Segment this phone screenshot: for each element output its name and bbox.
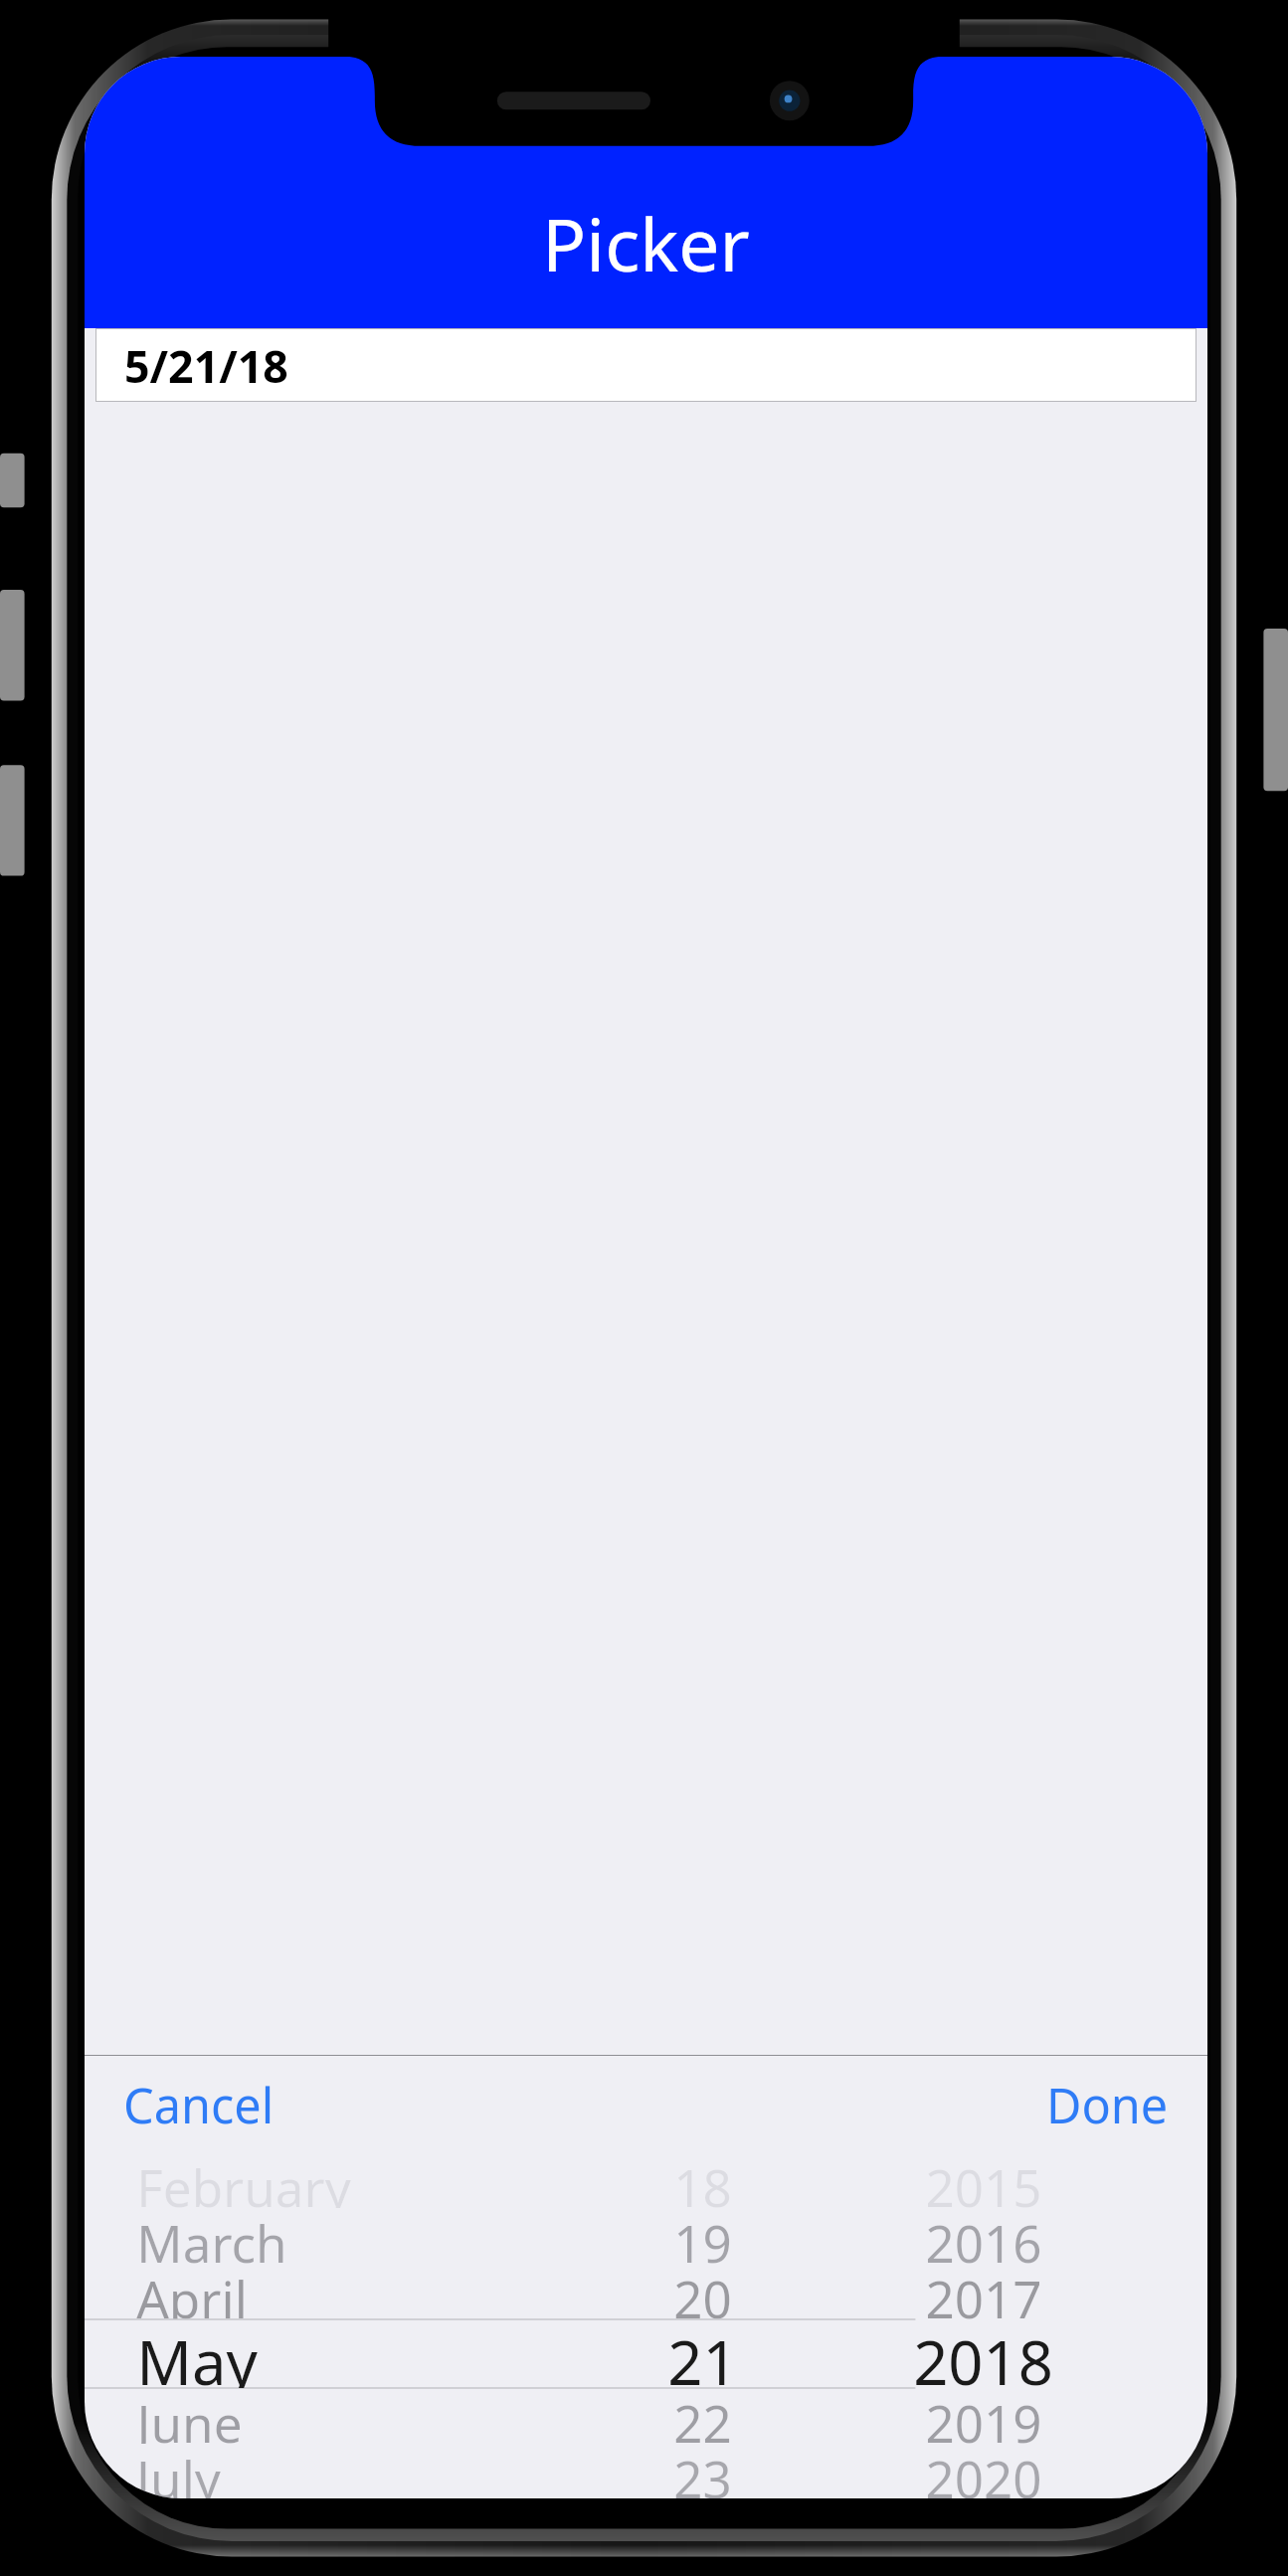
staticText: 2018 [913, 2319, 1053, 2388]
staticText: 2020 [925, 2444, 1042, 2498]
staticText: 23 [673, 2444, 732, 2498]
button[interactable]: 5/21/18 [95, 328, 1196, 402]
staticText: Picker [542, 194, 750, 293]
staticText: June [136, 2388, 243, 2444]
staticText: 19 [673, 2208, 732, 2264]
staticText: 2019 [925, 2388, 1042, 2444]
staticText: February [136, 2152, 351, 2208]
staticText: Done [1046, 2072, 1169, 2136]
staticText: 20 [673, 2264, 732, 2319]
staticText: 2016 [925, 2208, 1042, 2264]
staticText: 18 [673, 2152, 732, 2208]
staticText: April [136, 2264, 248, 2319]
button[interactable]: February [85, 2152, 1207, 2498]
staticText: July [136, 2444, 221, 2498]
staticText: 5/21/18 [124, 335, 288, 396]
button[interactable]: Cancel [110, 2056, 287, 2152]
staticText: 22 [673, 2388, 732, 2444]
staticText: 21 [667, 2319, 738, 2388]
staticText: March [136, 2208, 287, 2264]
staticText: Cancel [123, 2072, 275, 2136]
button[interactable]: Done [1033, 2056, 1182, 2152]
staticText: 2017 [925, 2264, 1042, 2319]
staticText: May [136, 2319, 258, 2388]
staticText: 2015 [925, 2152, 1042, 2208]
